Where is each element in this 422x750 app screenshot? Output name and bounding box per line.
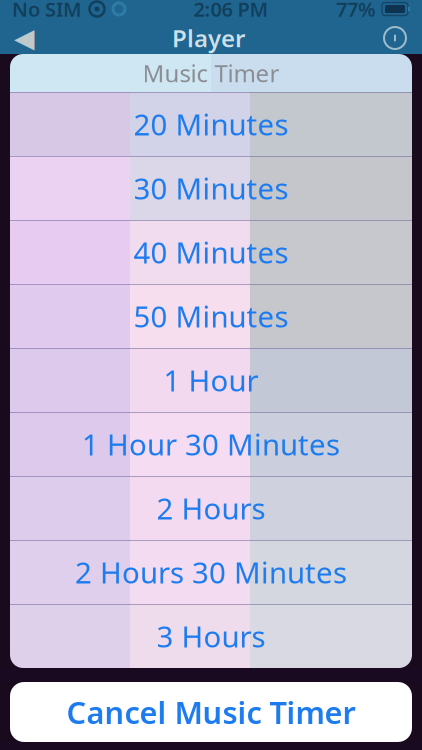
staticText: 1 Hour 30 Minutes	[82, 424, 340, 463]
staticText: 2 Hours	[156, 488, 265, 527]
staticText: 2 Hours 30 Minutes	[75, 552, 347, 591]
button[interactable]: 2 Hours 30 Minutes	[10, 540, 412, 604]
staticText: Cancel Music Timer	[66, 692, 355, 732]
button[interactable]: 50 Minutes	[10, 284, 412, 348]
staticText: ◀	[14, 23, 35, 53]
staticText: 40 Minutes	[133, 232, 288, 271]
button[interactable]: Cancel Music Timer	[0, 682, 422, 742]
staticText: 1 Hour	[163, 360, 258, 399]
staticText: 77%	[336, 0, 376, 22]
button[interactable]: 2 Hours	[10, 476, 412, 540]
staticText: 50 Minutes	[133, 296, 288, 335]
staticText: No SIM	[12, 0, 82, 22]
staticText: 30 Minutes	[133, 168, 288, 207]
staticText: Music Timer	[142, 57, 279, 89]
button[interactable]: 1 Hour	[10, 348, 412, 412]
button[interactable]: 40 Minutes	[10, 220, 412, 284]
staticText: 3 Hours	[156, 616, 265, 655]
staticText	[376, 0, 382, 24]
button[interactable]: 20 Minutes	[10, 92, 412, 156]
button[interactable]: 3 Hours	[10, 604, 412, 668]
staticText: 20 Minutes	[133, 104, 288, 143]
staticText: Player	[172, 22, 245, 54]
button[interactable]: 1 Hour 30 Minutes	[10, 412, 412, 476]
staticText: 2:06 PM	[193, 0, 268, 22]
button[interactable]: 30 Minutes	[10, 156, 412, 220]
